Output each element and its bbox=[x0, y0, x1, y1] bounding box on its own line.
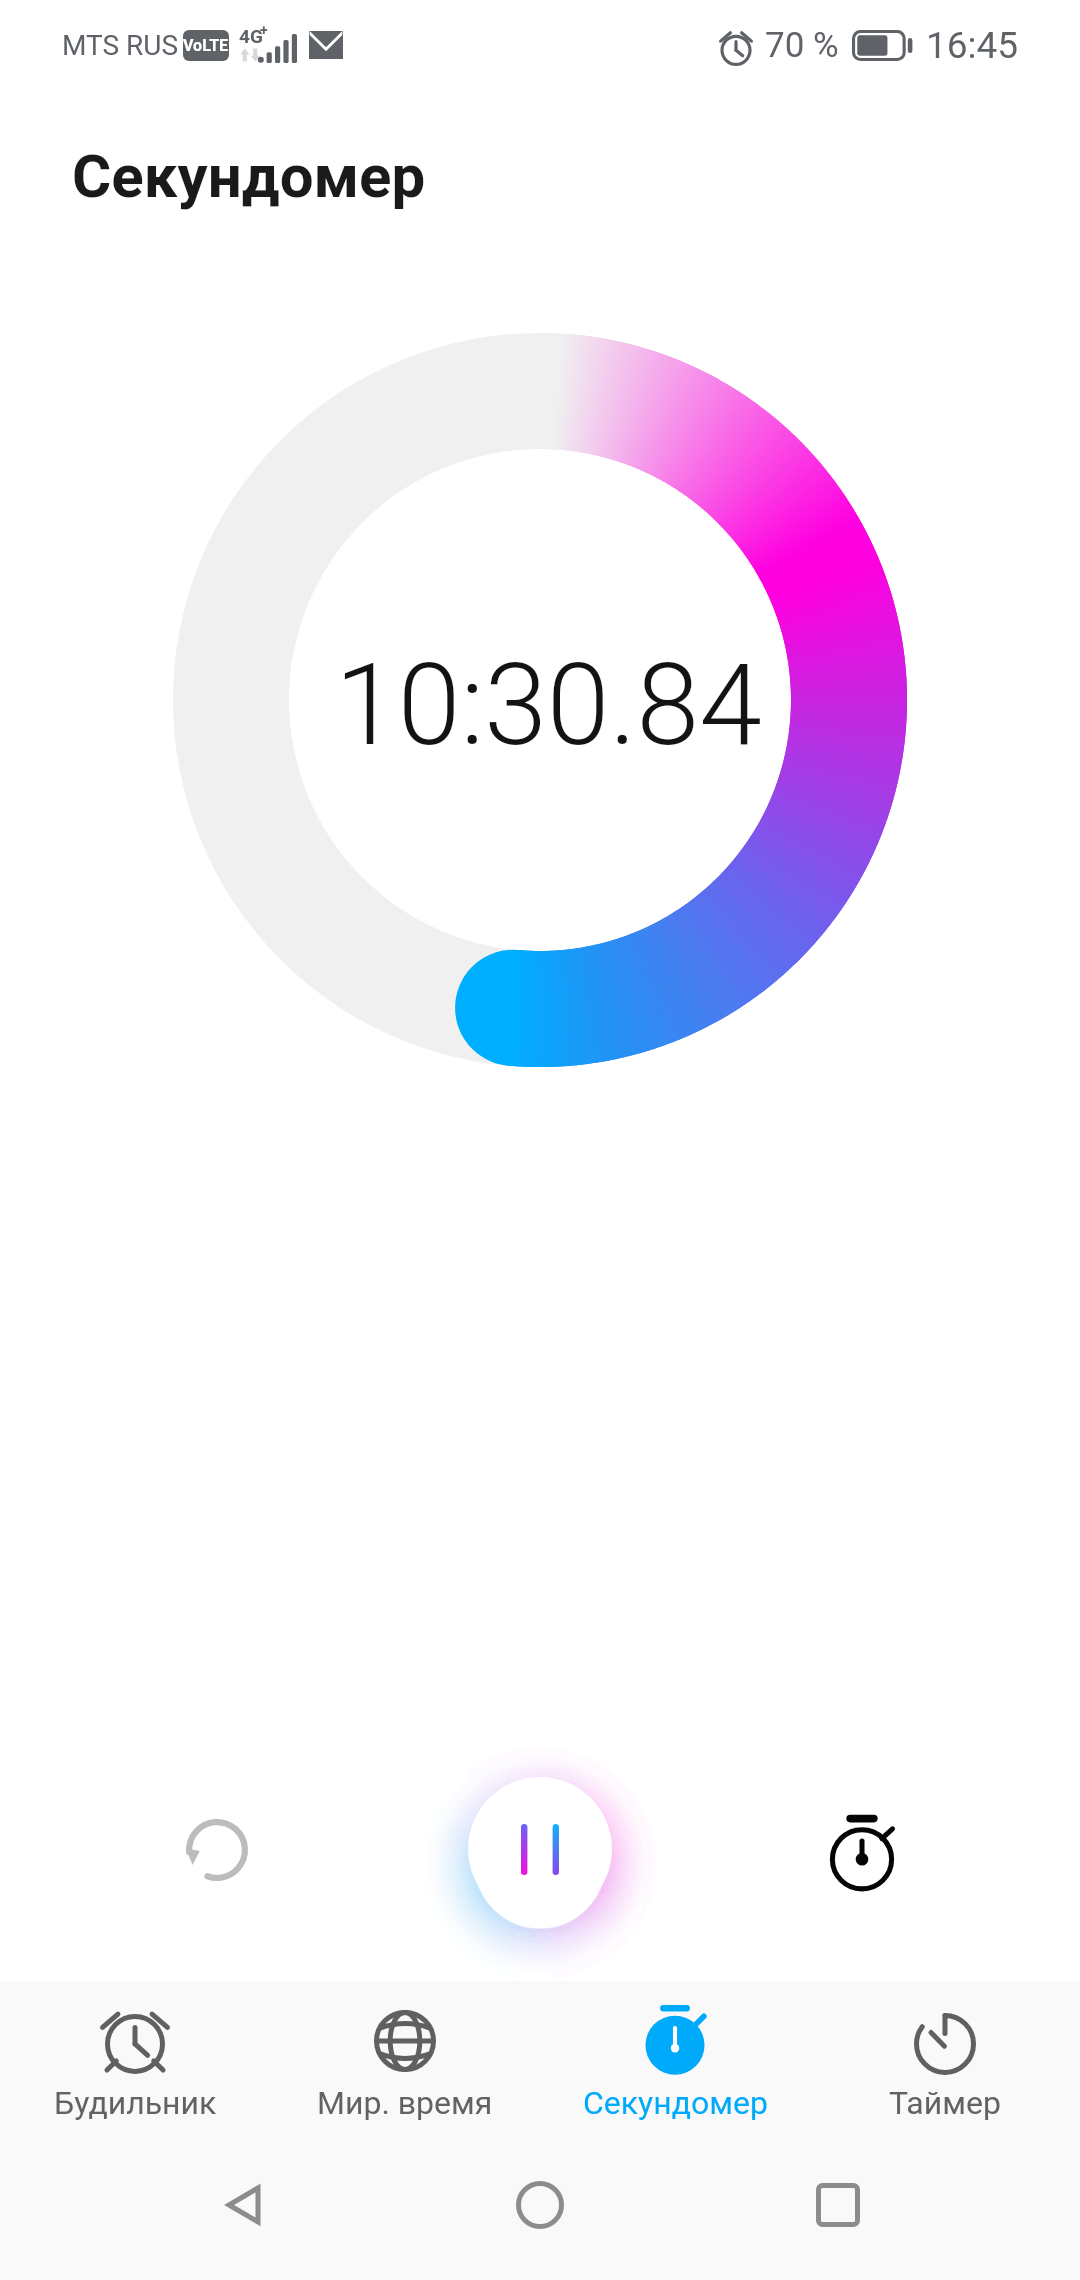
button[interactable]: Back bbox=[188, 2150, 298, 2260]
staticText: 16:45 bbox=[926, 24, 1019, 67]
button[interactable]: Home bbox=[485, 2150, 595, 2260]
staticText: Секундомер bbox=[72, 141, 426, 211]
staticText: 70 % bbox=[765, 25, 839, 66]
button[interactable]: Будильник bbox=[0, 1981, 270, 2129]
button[interactable]: Pause bbox=[420, 1729, 660, 1969]
staticText: 4G bbox=[239, 25, 263, 47]
staticText: Будильник bbox=[54, 2084, 217, 2122]
staticText: + bbox=[260, 22, 268, 38]
staticText: Секундомер bbox=[583, 2084, 768, 2122]
button[interactable]: Recents bbox=[783, 2150, 893, 2260]
staticText: Мир. время bbox=[317, 2084, 493, 2122]
button[interactable]: Секундомер bbox=[540, 1981, 810, 2129]
button[interactable]: Таймер bbox=[810, 1981, 1080, 2129]
button[interactable]: Lap bbox=[800, 1791, 924, 1915]
staticText: VoLTE bbox=[183, 36, 229, 55]
staticText: 10:30.84 bbox=[335, 639, 762, 771]
staticText: Таймер bbox=[889, 2084, 1001, 2122]
button[interactable]: Reset bbox=[155, 1788, 279, 1912]
staticText: MTS RUS bbox=[62, 29, 179, 62]
button[interactable]: Мир. время bbox=[270, 1981, 540, 2129]
